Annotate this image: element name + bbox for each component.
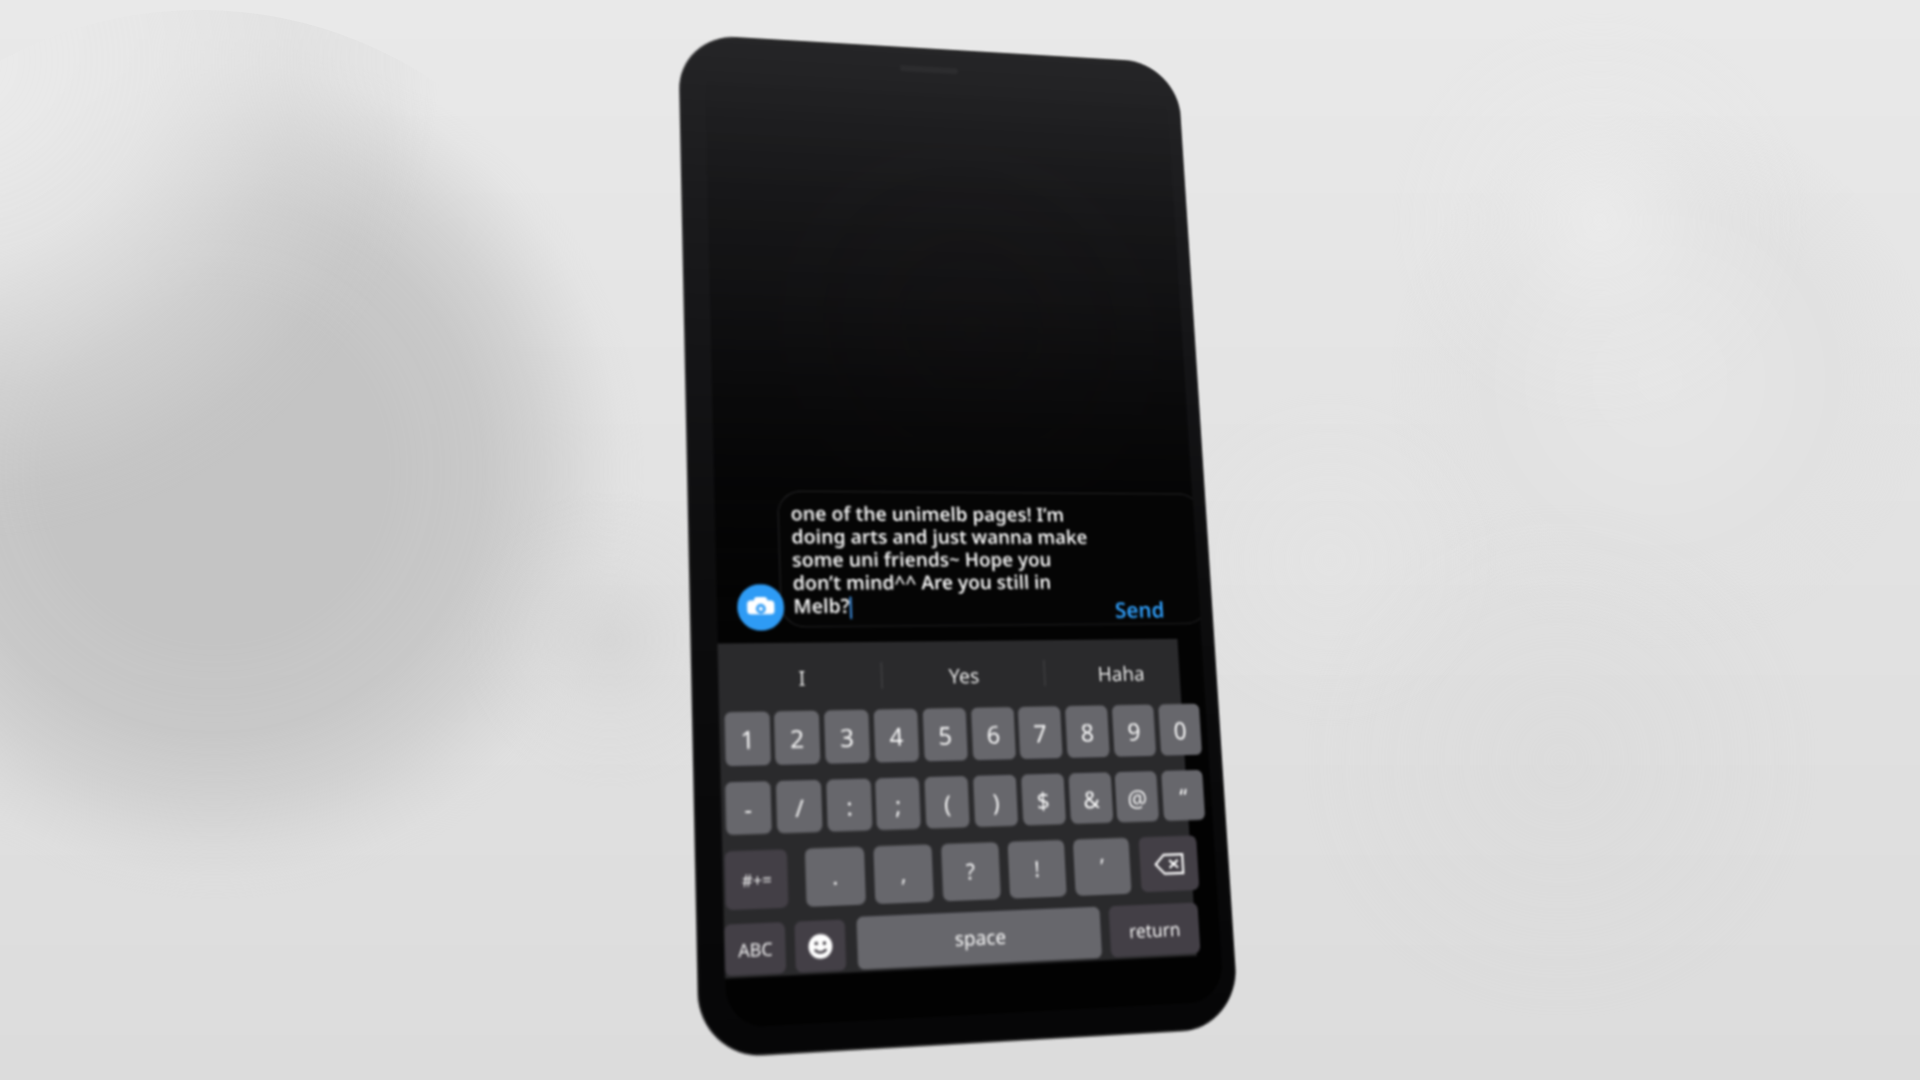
staticText: 7 [1033,716,1048,750]
button[interactable]: 0 [1158,703,1202,756]
staticText: , [900,859,907,889]
button[interactable]: Emoji [794,919,847,973]
staticText: space [954,923,1007,952]
button[interactable]: ; [875,777,921,830]
staticText: ; [894,788,903,820]
staticText: 9 [1126,714,1142,748]
button[interactable]: ? [941,842,1001,901]
staticText: 8 [1080,715,1095,749]
staticText: & [1082,783,1100,814]
button[interactable]: $ [1021,773,1066,826]
button[interactable]: ! [1007,840,1067,899]
staticText: ( [943,787,952,819]
button[interactable]: 4 [873,708,919,763]
button[interactable]: ABC [724,922,786,976]
button[interactable]: 3 [824,709,870,764]
button[interactable]: . [805,846,866,907]
button[interactable]: Haha [1044,645,1198,702]
staticText: 4 [889,719,904,753]
staticText: Haha [1097,660,1146,687]
button[interactable]: return [1108,902,1200,958]
staticText: #+= [741,868,772,892]
button[interactable]: : [826,778,873,832]
staticText: return [1128,916,1182,944]
staticText: ABC [738,936,773,963]
button[interactable]: / [776,780,823,833]
button[interactable]: Backspace [1138,835,1199,892]
button[interactable]: I [719,648,883,708]
button[interactable]: “ [1161,770,1205,821]
staticText: . [832,861,839,892]
button[interactable]: @ [1114,771,1159,823]
staticText: I [798,664,806,692]
staticText: 0 [1173,713,1188,746]
staticText: 3 [839,720,855,754]
button[interactable]: 7 [1018,706,1063,759]
button[interactable]: 2 [774,710,821,765]
staticText: 6 [986,717,1001,751]
staticText: / [795,791,805,823]
button[interactable]: , [873,844,934,904]
button[interactable]: ( [924,776,970,829]
staticText: Yes [948,662,981,690]
staticText: ’ [1100,852,1105,882]
button[interactable]: 8 [1065,705,1110,758]
staticText: “ [1179,780,1189,811]
staticText: 5 [938,718,953,752]
button[interactable]: Yes [881,646,1046,705]
button[interactable]: #+= [724,849,789,910]
staticText: Send [1114,594,1165,624]
staticText: $ [1036,784,1051,816]
button[interactable]: 6 [971,707,1016,760]
staticText: @ [1126,781,1148,813]
staticText: one of the unimelb pages! I’m doing arts… [790,499,1092,619]
staticText: ! [1033,854,1041,884]
button[interactable]: Camera [737,584,785,631]
button[interactable]: space [856,906,1102,970]
staticText: 1 [740,722,755,757]
staticText: ? [965,856,977,887]
button[interactable]: ’ [1073,837,1132,896]
staticText: : [846,789,854,822]
staticText: 2 [789,721,805,755]
button[interactable] [777,490,1201,628]
button[interactable]: & [1068,772,1113,824]
button[interactable]: 9 [1112,704,1156,757]
staticText: - [744,792,753,825]
button[interactable]: 1 [724,711,771,766]
button[interactable]: Send [1112,592,1167,626]
button[interactable]: 5 [922,708,968,762]
button[interactable]: - [725,781,772,835]
staticText: ) [992,785,1000,817]
button[interactable]: ) [973,775,1018,827]
